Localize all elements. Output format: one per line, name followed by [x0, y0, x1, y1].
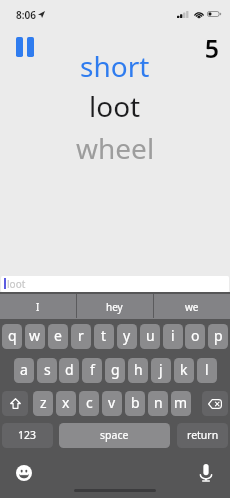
staticText: p — [214, 326, 223, 345]
staticText: I — [36, 300, 40, 314]
button[interactable]: s — [37, 358, 57, 383]
button[interactable]: Emoji keyboard — [16, 465, 32, 481]
staticText: n — [154, 393, 163, 412]
button[interactable]: I — [0, 294, 76, 319]
button[interactable]: hey — [76, 294, 153, 319]
staticText: z — [40, 393, 47, 412]
staticText: e — [54, 326, 62, 345]
button[interactable]: q — [2, 324, 22, 349]
staticText: space — [100, 428, 129, 442]
button[interactable]: f — [82, 358, 102, 383]
button[interactable]: r — [71, 324, 91, 349]
button[interactable]: u — [140, 324, 160, 349]
staticText: wheel — [76, 129, 155, 167]
staticText: k — [180, 360, 188, 379]
staticText: we — [185, 300, 199, 314]
button[interactable]: b — [125, 391, 145, 416]
staticText: 5 — [204, 31, 219, 65]
button[interactable]: 123 — [2, 423, 53, 448]
staticText: hey — [106, 300, 123, 314]
staticText: m — [174, 393, 188, 412]
staticText: a — [20, 360, 28, 379]
staticText: y — [123, 326, 131, 345]
button[interactable]: h — [128, 358, 148, 383]
button[interactable]: loot — [1, 276, 229, 292]
staticText: f — [90, 360, 95, 379]
staticText: 123 — [18, 428, 37, 442]
staticText: g — [111, 360, 120, 379]
staticText: short — [80, 47, 150, 85]
staticText: o — [191, 326, 200, 345]
button[interactable]: i — [163, 324, 183, 349]
button[interactable]: n — [148, 391, 168, 416]
button[interactable]: g — [105, 358, 125, 383]
button[interactable]: l — [197, 358, 217, 383]
button[interactable]: t — [94, 324, 114, 349]
button[interactable]: o — [185, 324, 205, 349]
staticText: loot — [89, 87, 141, 125]
staticText: return — [187, 428, 219, 442]
button[interactable]: w — [25, 324, 45, 349]
staticText: u — [146, 326, 155, 345]
button[interactable]: d — [59, 358, 79, 383]
staticText: c — [86, 393, 93, 412]
staticText: w — [29, 326, 41, 345]
staticText: j — [159, 360, 163, 379]
button[interactable]: z — [33, 391, 53, 416]
staticText: loot — [7, 277, 26, 291]
button[interactable]: j — [151, 358, 171, 383]
button[interactable]: y — [117, 324, 137, 349]
button[interactable]: k — [174, 358, 194, 383]
staticText: h — [134, 360, 143, 379]
staticText: b — [131, 393, 140, 412]
staticText: t — [101, 326, 107, 345]
staticText: q — [8, 326, 17, 345]
button[interactable]: p — [208, 324, 228, 349]
staticText: v — [108, 393, 116, 412]
button[interactable]: e — [48, 324, 68, 349]
staticText: l — [205, 360, 209, 379]
staticText: 8:06 — [16, 8, 36, 22]
button[interactable]: Dictation — [199, 464, 213, 482]
button[interactable]: return — [177, 423, 228, 448]
button[interactable]: m — [171, 391, 191, 416]
button[interactable]: Backspace — [202, 391, 228, 416]
button[interactable]: x — [56, 391, 76, 416]
button[interactable]: we — [153, 294, 230, 319]
button[interactable]: space — [59, 423, 170, 448]
button[interactable]: a — [14, 358, 34, 383]
staticText: d — [65, 360, 74, 379]
button[interactable]: Shift — [2, 391, 28, 416]
staticText: i — [171, 326, 175, 345]
staticText: x — [62, 393, 70, 412]
button[interactable]: c — [79, 391, 99, 416]
button[interactable]: Pause — [16, 37, 34, 57]
staticText: s — [44, 360, 51, 379]
button[interactable]: v — [102, 391, 122, 416]
staticText: r — [78, 326, 84, 345]
